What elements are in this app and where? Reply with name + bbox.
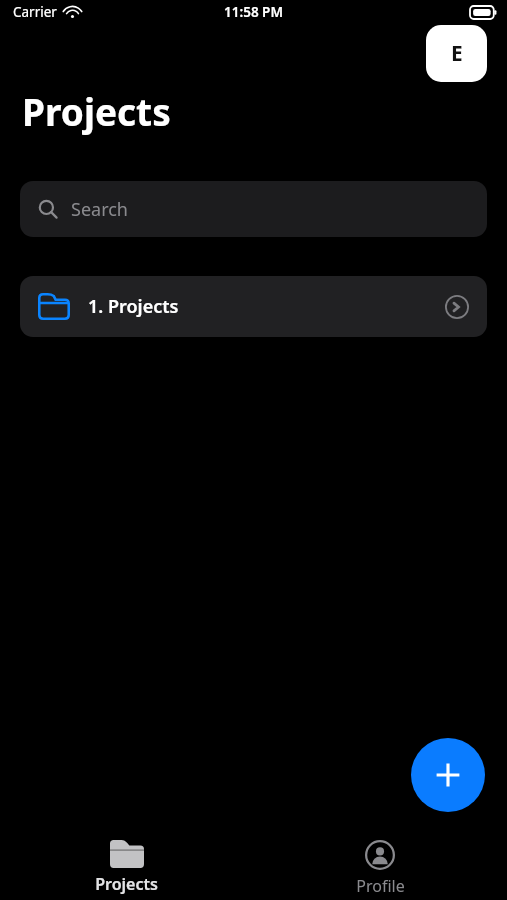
- staticText: Profile: [356, 875, 405, 897]
- staticText: Search: [71, 197, 128, 222]
- staticText: E: [451, 39, 463, 68]
- button[interactable]: Account: [426, 25, 487, 82]
- button[interactable]: 1. Projects: [20, 276, 487, 337]
- staticText: Projects: [95, 873, 158, 895]
- button[interactable]: Projects: [0, 830, 253, 900]
- button[interactable]: Search: [20, 181, 487, 237]
- staticText: 11:58 PM: [224, 3, 283, 21]
- staticText: 1. Projects: [88, 294, 445, 319]
- button[interactable]: Profile: [253, 830, 507, 900]
- staticText: Projects: [22, 86, 171, 136]
- staticText: Carrier: [13, 3, 57, 21]
- button[interactable]: Add project: [411, 738, 485, 812]
